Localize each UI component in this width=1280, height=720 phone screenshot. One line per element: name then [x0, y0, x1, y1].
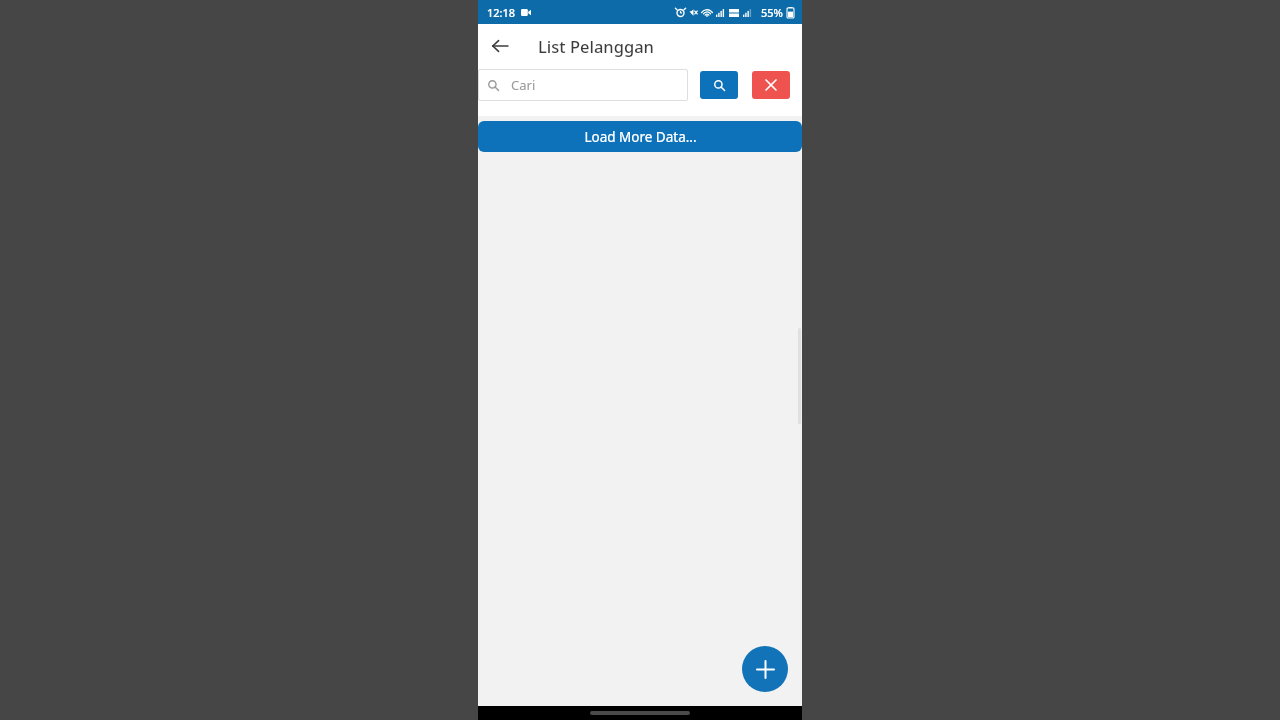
button[interactable]: Cari — [478, 69, 688, 101]
button[interactable]: Search — [700, 71, 738, 99]
staticText: 55% — [761, 5, 783, 20]
button[interactable]: Back — [478, 24, 522, 68]
staticText: Cari — [511, 76, 536, 94]
button[interactable]: Load More Data... — [478, 121, 802, 152]
button[interactable]: Clear — [752, 71, 790, 99]
staticText: Load More Data... — [584, 128, 697, 146]
button[interactable]: Add — [742, 646, 788, 692]
staticText: 12:18 — [487, 5, 516, 20]
staticText: List Pelanggan — [538, 35, 654, 57]
